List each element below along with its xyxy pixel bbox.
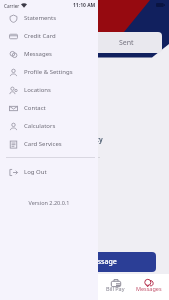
button[interactable]: Bill Pay [99,274,132,300]
button[interactable]: Profile & Settings [0,63,98,81]
button[interactable]: Inbox [20,32,91,53]
staticText: Carrier [4,3,20,9]
staticText: Calculators [24,122,56,130]
staticText: Statements [24,14,57,22]
button[interactable]: Log Out [0,163,98,181]
staticText: Bill Pay [106,285,125,292]
staticText: Contact [24,104,46,112]
staticText: Log Out [24,168,47,176]
button[interactable]: Card Services [0,135,98,153]
button[interactable]: Credit Card [0,27,98,45]
button[interactable]: Sent [91,32,162,53]
button[interactable]: Locations [0,81,98,99]
staticText: Credit Card [24,32,56,40]
button[interactable]: Messages [0,45,98,63]
staticText: Version 2.20.0.1 [0,199,98,206]
button[interactable]: Contact [0,99,98,117]
button[interactable]: Statements [0,9,98,27]
staticText: Locations [24,86,51,94]
staticText: Card Services [24,140,62,148]
staticText: Sent [119,38,134,48]
button[interactable]: Calculators [0,117,98,135]
staticText: Messages [24,50,52,58]
staticText: Send New Message [52,257,117,267]
staticText: Account Security [48,135,103,144]
staticText: Profile & Settings [24,68,73,76]
staticText: 11:10 AM [73,2,96,9]
button[interactable]: Send New Message [13,252,156,272]
button[interactable]: Messages [132,274,165,300]
staticText: Messages [136,285,162,292]
